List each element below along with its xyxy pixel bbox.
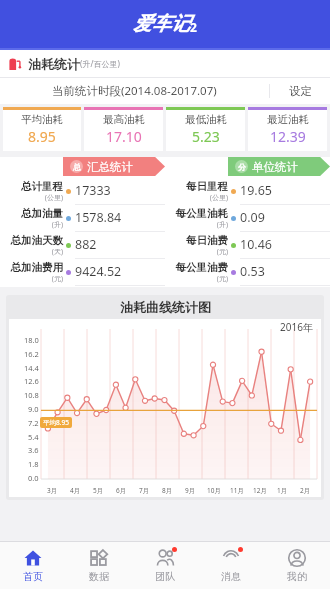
staticText: 16.2 <box>24 349 39 359</box>
staticText: 6月 <box>116 486 127 495</box>
staticText: 0.0 <box>28 473 39 483</box>
staticText: 9.0 <box>28 404 39 414</box>
staticText: 团队 <box>155 570 175 583</box>
staticText: 单位统计 <box>252 160 298 174</box>
staticText: 10月 <box>207 486 221 495</box>
staticText: 每日里程 <box>186 180 228 193</box>
staticText: 5月 <box>93 486 104 495</box>
staticText: 爱车记 <box>133 12 190 36</box>
staticText: 17333 <box>75 182 111 199</box>
button[interactable]: 总计里程 <box>0 178 165 205</box>
staticText: 最近油耗 <box>267 113 309 126</box>
staticText: 首页 <box>23 570 43 583</box>
staticText: 消息 <box>221 570 241 583</box>
button[interactable]: 总加油天数 <box>0 232 165 259</box>
staticText: 数据 <box>89 570 109 583</box>
other: 数据 <box>90 549 108 567</box>
staticText: 汇总统计 <box>87 160 133 174</box>
staticText: 最低油耗 <box>185 113 227 126</box>
button[interactable]: 总加油量 <box>0 205 165 232</box>
staticText: 油耗曲线统计图 <box>120 299 211 315</box>
staticText: 12.39 <box>270 127 306 146</box>
button[interactable]: 团队 <box>132 542 198 589</box>
staticText: 7.2 <box>28 418 39 428</box>
button[interactable]: 每公里油耗 <box>165 205 330 232</box>
staticText: 设定 <box>289 84 312 98</box>
staticText: 2016年 <box>280 320 313 334</box>
staticText: (升) <box>51 220 63 230</box>
staticText: 总加油量 <box>21 207 63 220</box>
button[interactable]: 平均油耗 <box>3 107 81 151</box>
staticText: (天) <box>51 247 63 257</box>
staticText: 18.0 <box>24 335 39 345</box>
staticText: 12.6 <box>24 376 39 386</box>
button[interactable]: 最高油耗 <box>84 107 163 151</box>
staticText: (升) <box>216 220 228 230</box>
button[interactable]: 设定 <box>270 78 330 104</box>
staticText: 8.95 <box>28 127 56 146</box>
staticText: 0.09 <box>240 209 265 226</box>
staticText: 总 <box>73 162 81 172</box>
staticText: 0.53 <box>240 263 265 280</box>
staticText: 14.4 <box>24 363 39 373</box>
staticText: 2 <box>190 19 197 35</box>
staticText: 1.8 <box>28 459 39 469</box>
button[interactable]: 当前统计时段(2014.08-2017.07) <box>0 78 269 104</box>
staticText: (公里) <box>209 193 228 203</box>
staticText: 分 <box>238 162 246 172</box>
staticText: 1578.84 <box>75 209 122 226</box>
staticText: 10.46 <box>240 236 272 253</box>
other: 团队 <box>156 549 174 567</box>
staticText: 3月 <box>47 486 58 495</box>
staticText: 油耗统计 <box>28 56 80 72</box>
other: 我的 <box>288 549 306 567</box>
button[interactable]: 分 <box>228 157 330 176</box>
button[interactable]: 每公里油费 <box>165 259 330 286</box>
staticText: 3.6 <box>28 445 39 455</box>
staticText: 总计里程 <box>21 180 63 193</box>
staticText: 2月 <box>300 486 311 495</box>
staticText: 最高油耗 <box>103 113 145 126</box>
staticText: (元) <box>216 274 228 284</box>
button[interactable]: 数据 <box>66 542 132 589</box>
staticText: 每日油费 <box>186 234 228 247</box>
staticText: 每公里油费 <box>175 261 228 274</box>
button[interactable]: 最低油耗 <box>166 107 245 151</box>
button[interactable]: 我的 <box>264 542 330 589</box>
staticText: 9424.52 <box>75 263 122 280</box>
other: 消息 <box>222 549 240 567</box>
staticText: 总加油天数 <box>10 234 63 247</box>
staticText: 9月 <box>185 486 196 495</box>
button[interactable]: 总 <box>63 157 165 176</box>
staticText: 17.10 <box>106 127 142 146</box>
button[interactable]: 每日里程 <box>165 178 330 205</box>
staticText: 19.65 <box>240 182 272 199</box>
staticText: 1月 <box>277 486 288 495</box>
button[interactable]: 每日油费 <box>165 232 330 259</box>
staticText: 12月 <box>253 486 267 495</box>
staticText: 11月 <box>230 486 244 495</box>
staticText: 平均油耗 <box>21 113 63 126</box>
button[interactable]: 首页 <box>0 542 66 589</box>
button[interactable]: 最近油耗 <box>248 107 327 151</box>
staticText: 5.23 <box>192 127 220 146</box>
button[interactable]: 总加油费用 <box>0 259 165 286</box>
staticText: 7月 <box>139 486 150 495</box>
staticText: (元) <box>216 247 228 257</box>
staticText: 882 <box>75 236 97 253</box>
staticText: (元) <box>51 274 63 284</box>
staticText: 总加油费用 <box>10 261 63 274</box>
staticText: 10.8 <box>24 390 39 400</box>
staticText: 平均8.95 <box>43 418 69 427</box>
staticText: 4月 <box>70 486 81 495</box>
staticText: 当前统计时段(2014.08-2017.07) <box>52 83 217 99</box>
staticText: (公里) <box>44 193 63 203</box>
staticText: (升/百公里) <box>80 58 120 69</box>
staticText: 5.4 <box>28 432 39 442</box>
button[interactable]: 消息 <box>198 542 264 589</box>
staticText: 我的 <box>287 570 307 583</box>
staticText: 8月 <box>162 486 173 495</box>
staticText: 每公里油耗 <box>175 207 228 220</box>
other: 首页 <box>24 549 42 567</box>
